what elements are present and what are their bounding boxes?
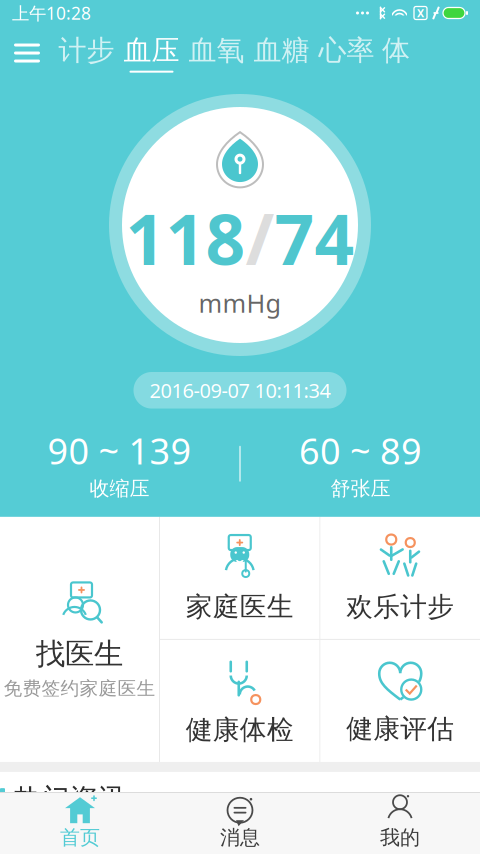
button[interactable]: 我的	[320, 792, 480, 854]
staticText: 74	[274, 192, 354, 284]
staticText: 118	[125, 192, 245, 284]
staticText: 血压	[123, 33, 179, 68]
staticText: 消息	[220, 825, 260, 850]
button[interactable]: 计步	[54, 26, 119, 80]
staticText: 欢乐计步	[346, 591, 454, 623]
staticText: 体	[382, 33, 410, 68]
button[interactable]: 消息	[160, 792, 320, 854]
button[interactable]: 血氧	[184, 26, 249, 80]
staticText: 上午10:28	[12, 1, 91, 24]
staticText: mmHg	[198, 286, 281, 320]
staticText: 90 ~ 139	[47, 427, 191, 474]
staticText: 收缩压	[89, 476, 149, 501]
button[interactable]: 家庭医生	[160, 517, 319, 639]
staticText: 血氧	[188, 33, 244, 68]
staticText: 健康体检	[186, 714, 294, 746]
button[interactable]: 健康体检	[160, 640, 319, 762]
button[interactable]: 首页	[0, 792, 160, 854]
button[interactable]: 找医生	[0, 517, 159, 762]
staticText: 我的	[380, 825, 420, 850]
staticText: 60 ~ 89	[299, 427, 422, 474]
button[interactable]: 欢乐计步	[320, 517, 480, 639]
staticText: 家庭医生	[186, 591, 294, 623]
button[interactable]: 体	[379, 26, 413, 80]
staticText: 首页	[60, 825, 100, 850]
button[interactable]: 心率	[314, 26, 379, 80]
staticText: 心率	[318, 33, 374, 68]
button[interactable]: 健康评估	[320, 640, 480, 762]
staticText: 血糖	[253, 33, 309, 68]
staticText: 2016-09-07 10:11:34	[149, 377, 330, 404]
button[interactable]: 菜单	[0, 26, 54, 80]
button[interactable]: 血糖	[249, 26, 314, 80]
staticText: 舒张压	[330, 476, 390, 501]
staticText: 免费签约家庭医生	[3, 677, 155, 700]
button[interactable]: 血压	[119, 26, 184, 80]
staticText: 找医生	[36, 636, 123, 672]
staticText: /	[245, 192, 274, 284]
button[interactable]: 2016-09-07 10:11:34	[133, 372, 346, 409]
staticText: 健康评估	[346, 713, 454, 745]
staticText: X	[417, 6, 424, 20]
staticText: 热门资讯	[14, 782, 126, 816]
staticText: 计步	[58, 33, 114, 68]
